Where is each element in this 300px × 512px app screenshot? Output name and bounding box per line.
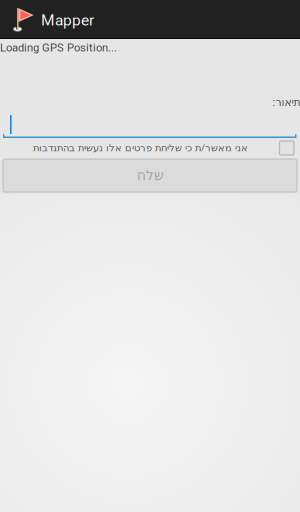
staticText: שלח xyxy=(136,167,163,183)
staticText: Loading GPS Position... xyxy=(0,41,117,54)
button[interactable]: שלח xyxy=(3,159,297,192)
staticText: אני מאשר/ת כי שליחת פרטים אלו נעשית בהתנ… xyxy=(32,142,247,154)
staticText: Mapper xyxy=(41,11,94,29)
staticText: תיאור: xyxy=(272,96,300,109)
button[interactable]: I confirm sending these details is volun… xyxy=(279,141,294,155)
